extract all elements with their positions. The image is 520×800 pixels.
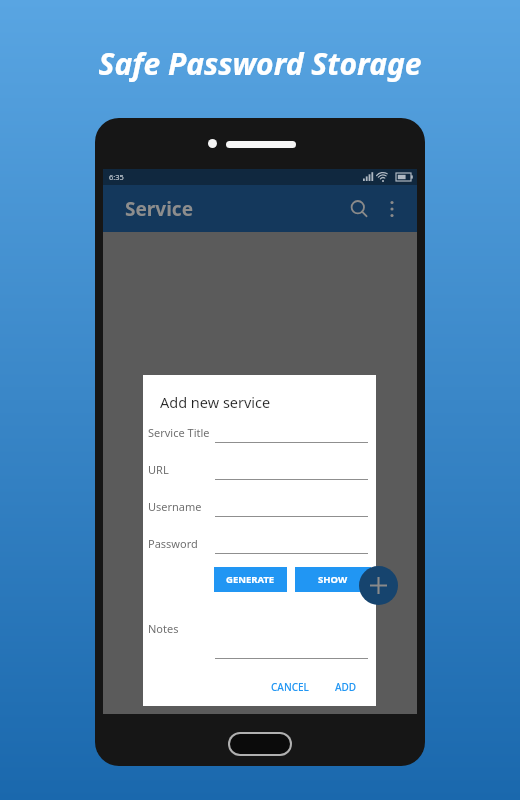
staticText: Service (125, 196, 193, 222)
button[interactable]: Home (230, 734, 290, 754)
button[interactable]: More options (377, 194, 407, 224)
button[interactable]: CANCEL (261, 676, 319, 698)
button[interactable]: Add (359, 566, 398, 605)
staticText: CANCEL (271, 680, 309, 694)
staticText: GENERATE (226, 573, 275, 586)
staticText: Username (148, 499, 202, 514)
staticText: SHOW (318, 573, 348, 586)
button[interactable]: SHOW (295, 567, 371, 592)
staticText: Notes (148, 621, 216, 636)
staticText: Safe Password Storage (0, 43, 520, 84)
staticText: ADD (335, 680, 357, 694)
staticText: Add new service (160, 392, 271, 412)
staticText: Service Title (148, 425, 210, 440)
button[interactable]: Search (343, 193, 375, 225)
staticText: URL (148, 462, 169, 477)
button[interactable]: GENERATE (214, 567, 287, 592)
button[interactable]: ADD (325, 676, 367, 698)
staticText: 6:35 (109, 172, 124, 182)
staticText: Password (148, 536, 198, 551)
